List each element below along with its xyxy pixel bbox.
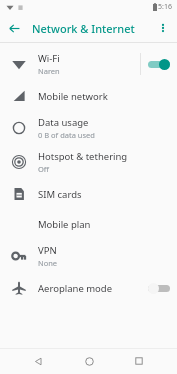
staticText: Hotspot & tethering xyxy=(38,150,128,163)
button[interactable]: Mobile network xyxy=(0,81,177,111)
button[interactable]: Back xyxy=(0,14,28,42)
staticText: None xyxy=(38,258,58,268)
button[interactable]: More options xyxy=(149,14,177,42)
button[interactable]: Back xyxy=(25,348,51,374)
button[interactable]: VPN xyxy=(0,239,177,273)
staticText: Naren xyxy=(38,66,60,76)
staticText: Network & Internet xyxy=(32,21,135,36)
button[interactable]: Hotspot & tethering xyxy=(0,145,177,179)
staticText: Wi-Fi xyxy=(38,52,60,65)
button[interactable]: Aeroplane mode xyxy=(0,273,177,303)
button[interactable]: Mobile plan xyxy=(0,209,177,239)
button[interactable]: Home xyxy=(76,348,102,374)
button[interactable]: Data usage xyxy=(0,111,177,145)
staticText: SIM cards xyxy=(38,188,82,201)
staticText: VPN xyxy=(38,244,57,257)
staticText: Mobile plan xyxy=(38,218,91,231)
button[interactable]: Recents xyxy=(126,348,152,374)
button[interactable]: Wi-Fi toggle xyxy=(141,49,177,79)
button[interactable]: SIM cards xyxy=(0,179,177,209)
staticText: 0 B of data used xyxy=(38,130,95,140)
staticText: Off xyxy=(38,164,50,174)
staticText: Mobile network xyxy=(38,90,108,103)
staticText: Data usage xyxy=(38,116,89,129)
staticText: Aeroplane mode xyxy=(38,282,113,295)
button[interactable]: Wi-Fi xyxy=(0,47,177,81)
staticText: 5:16 xyxy=(158,2,172,12)
button[interactable]: Aeroplane mode toggle xyxy=(141,273,177,303)
